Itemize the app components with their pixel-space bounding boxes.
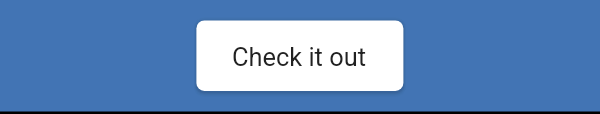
staticText: Check it out [232,42,366,72]
button[interactable]: Check it out [196,20,403,91]
